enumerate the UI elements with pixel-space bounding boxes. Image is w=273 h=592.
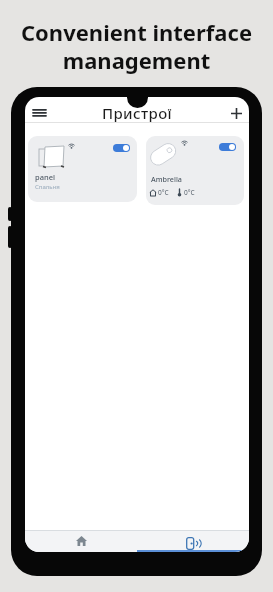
staticText: Convenient interface management [0, 17, 273, 76]
staticText: Ambrella [151, 174, 182, 184]
staticText: panel [35, 172, 55, 182]
button[interactable] [219, 143, 236, 151]
button[interactable] [113, 144, 130, 152]
button[interactable] [25, 530, 137, 552]
staticText: Спальня [35, 183, 60, 191]
staticText: 0°C [184, 188, 195, 197]
button[interactable]: panel [28, 136, 137, 202]
staticText: 0°C [158, 188, 169, 197]
button[interactable]: Ambrella [146, 136, 244, 205]
button[interactable] [137, 530, 249, 552]
button[interactable] [224, 101, 248, 125]
staticText: Пристрої [25, 103, 249, 123]
button[interactable] [27, 101, 51, 125]
